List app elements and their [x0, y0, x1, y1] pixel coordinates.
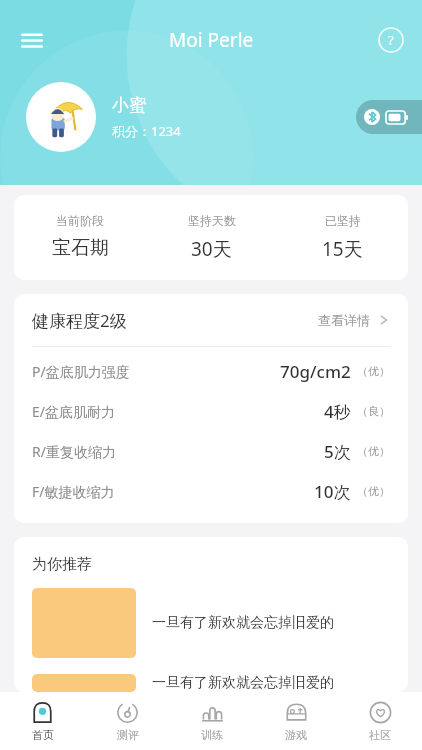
staticText: 70g/cm2: [280, 360, 351, 383]
staticText: 游戏: [285, 728, 307, 742]
staticText: E/盆底肌耐力: [32, 402, 115, 421]
staticText: 积分：1234: [112, 122, 181, 140]
staticText: （优）: [357, 364, 390, 378]
button[interactable]: P/盆底肌力强度: [14, 351, 408, 391]
staticText: 查看详情: [318, 312, 370, 328]
button[interactable]: 首页: [0, 692, 85, 750]
staticText: 为你推荐: [32, 555, 92, 574]
staticText: 小蜜: [112, 95, 146, 116]
staticText: 15天: [322, 236, 363, 262]
button[interactable]: F/敏捷收缩力: [14, 471, 408, 511]
button[interactable]: R/重复收缩力: [14, 431, 408, 471]
staticText: 训练: [201, 728, 223, 742]
button[interactable]: 测评: [85, 692, 170, 750]
button[interactable]: Help: [370, 19, 412, 61]
staticText: 30天: [191, 236, 232, 262]
button[interactable]: 训练: [170, 692, 254, 750]
staticText: Moi Perle: [169, 27, 254, 53]
staticText: 10次: [314, 480, 351, 503]
button[interactable]: E/盆底肌耐力: [14, 391, 408, 431]
button[interactable]: Device status: [356, 100, 422, 134]
staticText: 测评: [117, 728, 139, 742]
staticText: 健康程度2级: [32, 309, 127, 332]
button[interactable]: 当前阶段: [14, 195, 408, 280]
staticText: 首页: [32, 728, 54, 742]
staticText: （良）: [357, 404, 390, 418]
button[interactable]: 游戏: [254, 692, 338, 750]
button[interactable]: 社区: [338, 692, 422, 750]
staticText: 4秒: [324, 400, 351, 423]
staticText: 坚持天数: [188, 213, 236, 228]
staticText: 社区: [369, 728, 391, 742]
button[interactable]: 一旦有了新欢就会忘掉旧爱的: [14, 674, 408, 692]
staticText: 一旦有了新欢就会忘掉旧爱的: [152, 614, 334, 632]
staticText: （优）: [357, 444, 390, 458]
button[interactable]: 健康程度2级: [14, 294, 408, 346]
button[interactable]: 一旦有了新欢就会忘掉旧爱的: [14, 588, 408, 658]
staticText: 已坚持: [325, 213, 361, 228]
staticText: ?: [388, 31, 394, 49]
staticText: 宝石期: [52, 236, 109, 260]
staticText: 5次: [324, 440, 351, 463]
button[interactable]: 小蜜: [26, 82, 181, 152]
staticText: （优）: [357, 484, 390, 498]
staticText: 一旦有了新欢就会忘掉旧爱的: [152, 674, 334, 692]
button[interactable]: Menu: [8, 16, 56, 64]
staticText: F/敏捷收缩力: [32, 482, 115, 501]
staticText: P/盆底肌力强度: [32, 362, 130, 381]
staticText: 当前阶段: [56, 213, 104, 228]
staticText: R/重复收缩力: [32, 442, 116, 461]
